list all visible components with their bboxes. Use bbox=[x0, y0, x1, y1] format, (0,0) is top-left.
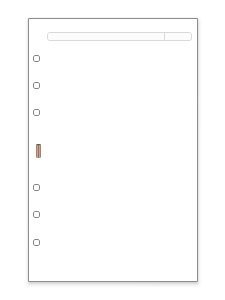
other: Item 6 checkbox bbox=[33, 239, 40, 246]
other: Item 1 checkbox bbox=[33, 55, 40, 62]
other: Item 5 checkbox bbox=[33, 211, 40, 218]
button[interactable]: Item 3 checkbox bbox=[28, 105, 198, 119]
button[interactable]: Current line marker bbox=[32, 139, 44, 162]
button[interactable]: Item 2 checkbox bbox=[28, 78, 198, 92]
other: Item 3 checkbox bbox=[33, 109, 40, 116]
button[interactable]: Search bbox=[47, 32, 192, 41]
other: Item 2 checkbox bbox=[33, 82, 40, 89]
button[interactable]: Item 6 checkbox bbox=[28, 235, 198, 249]
other: Item 4 checkbox bbox=[33, 184, 40, 191]
button[interactable]: Item 1 checkbox bbox=[28, 51, 198, 65]
button[interactable]: Item 5 checkbox bbox=[28, 207, 198, 221]
button[interactable]: Item 4 checkbox bbox=[28, 180, 198, 194]
